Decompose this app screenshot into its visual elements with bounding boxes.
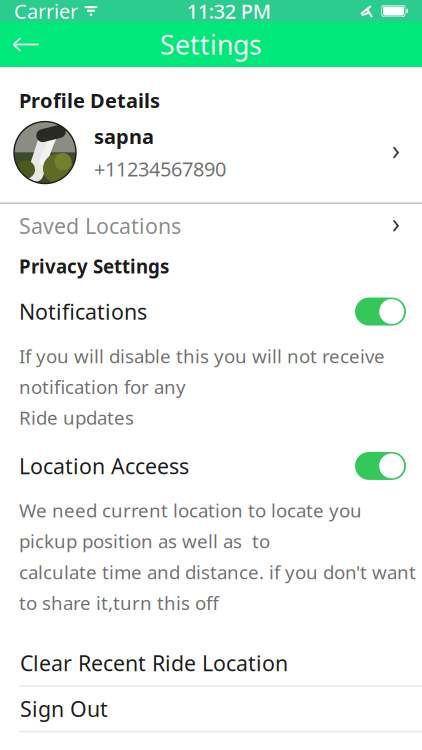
staticText: Clear Recent Ride Location: [20, 649, 288, 677]
staticText: Sign Out: [20, 694, 108, 723]
staticText: Saved Locations: [19, 212, 181, 240]
staticText: +11234567890: [94, 156, 226, 182]
staticText: Location Acceess: [19, 452, 189, 480]
staticText: Notifications: [19, 297, 147, 326]
button[interactable]: Sign Out: [0, 687, 422, 732]
staticText: Privacy Settings: [19, 254, 169, 279]
button[interactable]: Notifications: [355, 297, 422, 325]
staticText: 11:32 PM: [187, 0, 271, 24]
button[interactable]: Saved Locations: [0, 204, 422, 248]
staticText: Carrier: [14, 0, 78, 24]
button[interactable]: sapna: [0, 114, 422, 192]
button[interactable]: Clear Recent Ride Location: [0, 641, 422, 687]
staticText: Settings: [160, 27, 262, 62]
button[interactable]: Back: [0, 22, 52, 67]
staticText: sapna: [94, 123, 154, 150]
staticText: Profile Details: [19, 87, 160, 114]
staticText: If you will disable this you will not re…: [19, 343, 385, 430]
button[interactable]: Location Acceess: [355, 452, 422, 480]
staticText: We need current location to locate you p…: [19, 498, 416, 615]
